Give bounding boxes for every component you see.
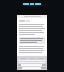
button[interactable]: Toolbar (17, 15, 47, 18)
button[interactable]: Title (21, 3, 43, 5)
button[interactable]: Selected text (20, 38, 44, 43)
